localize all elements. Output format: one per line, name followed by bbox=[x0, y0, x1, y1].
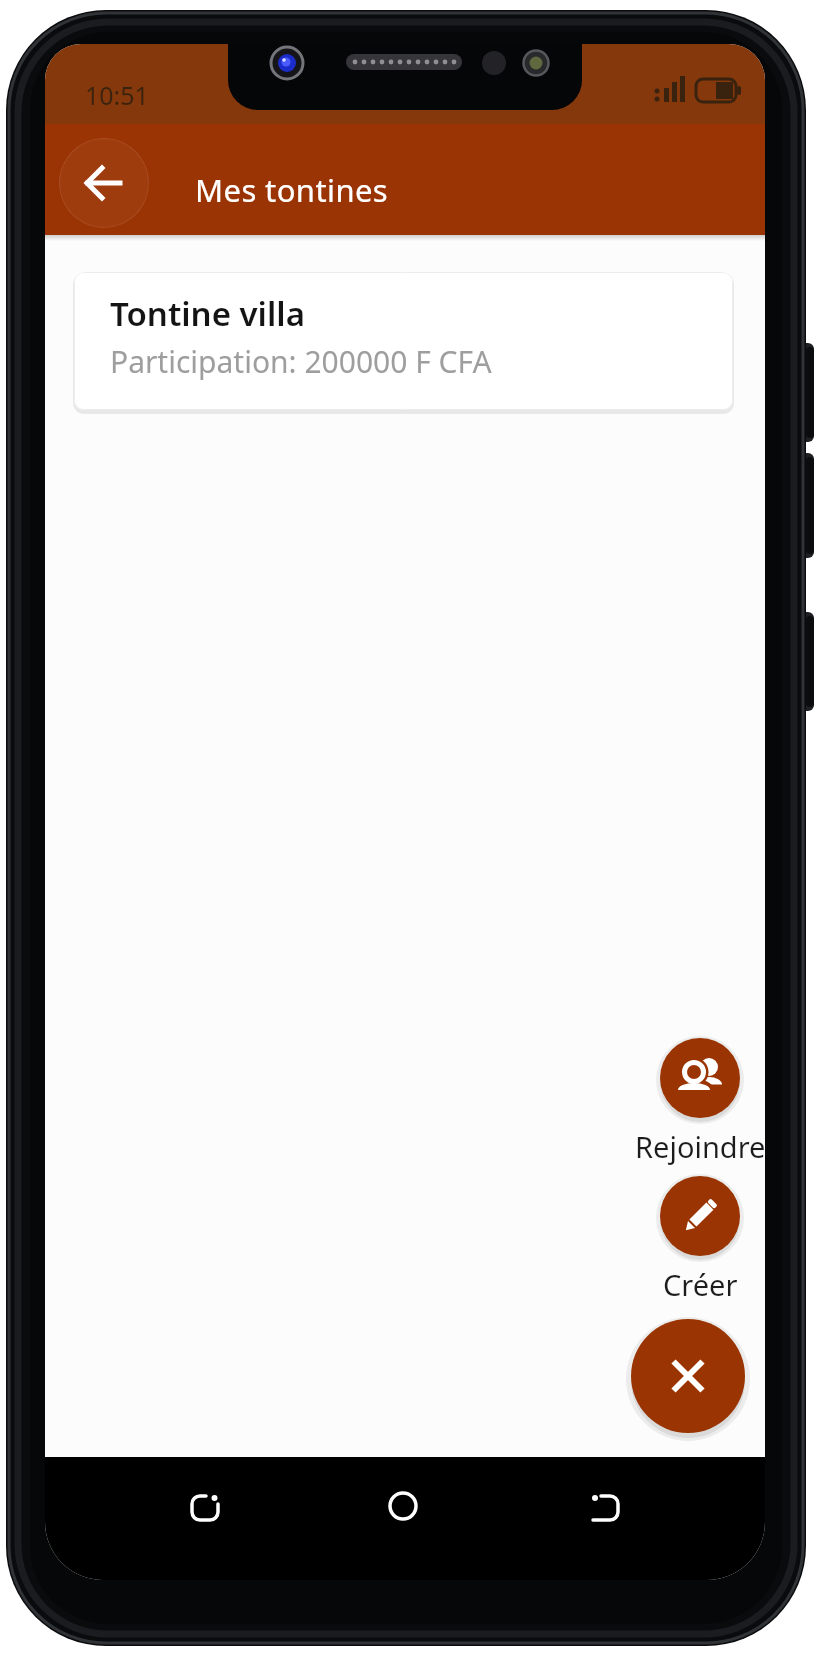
staticText: Participation: 200000 F CFA bbox=[110, 341, 492, 382]
button[interactable] bbox=[631, 1319, 745, 1433]
button[interactable]: Tontine villa bbox=[74, 272, 733, 410]
button[interactable] bbox=[660, 1176, 740, 1256]
staticText: Mes tontines bbox=[195, 169, 389, 211]
button[interactable] bbox=[59, 138, 149, 228]
button[interactable] bbox=[660, 1038, 740, 1118]
staticText: Rejoindre bbox=[635, 1127, 765, 1166]
staticText: 10:51 bbox=[85, 78, 149, 112]
staticText: Tontine villa bbox=[110, 291, 305, 336]
staticText: Créer bbox=[663, 1265, 738, 1304]
